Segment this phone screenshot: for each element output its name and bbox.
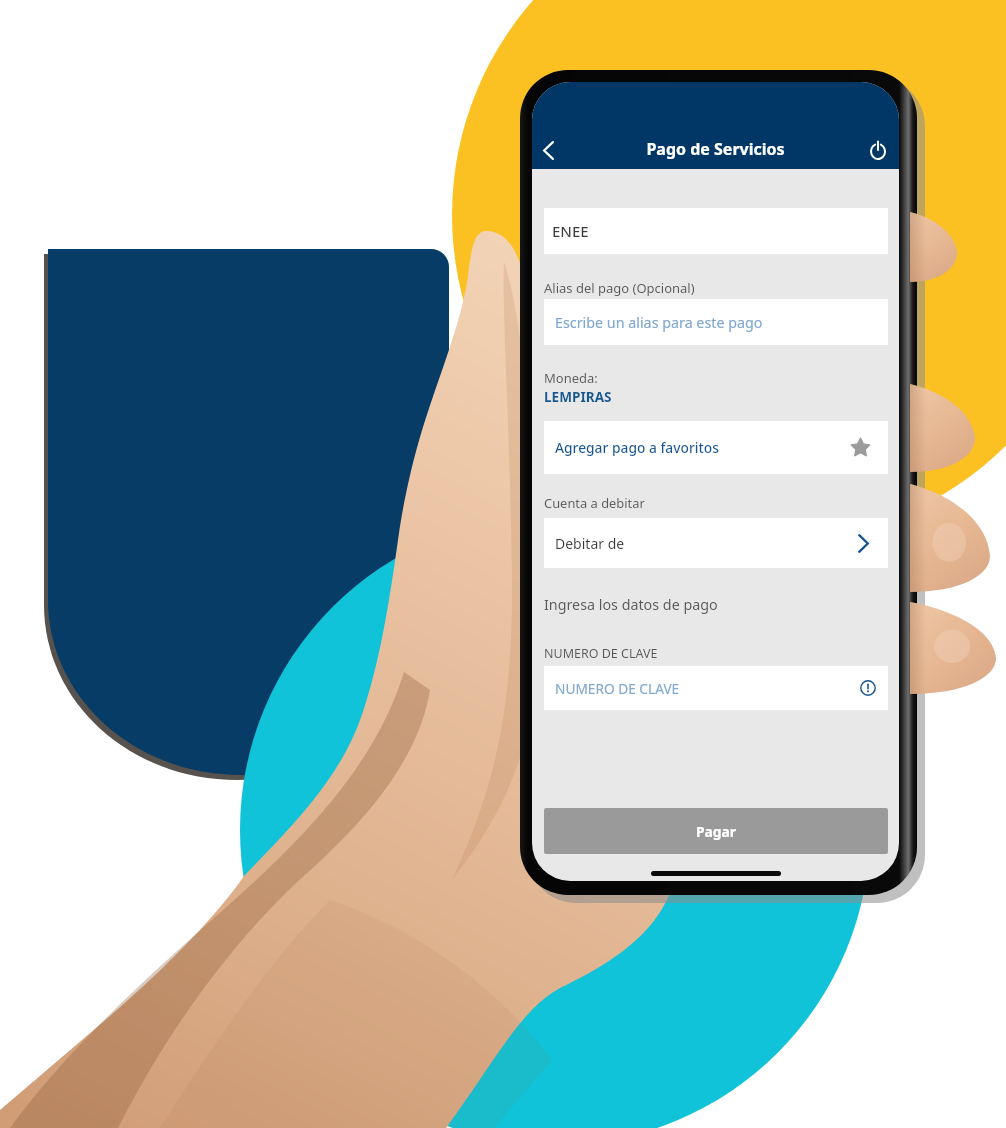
staticText: Cuenta a debitar: [544, 494, 645, 512]
staticText: LEMPIRAS: [544, 387, 612, 406]
button[interactable]: Back: [532, 128, 570, 172]
staticText: Alias del pago (Opcional): [544, 279, 695, 297]
button[interactable]: Power off: [856, 128, 899, 172]
button[interactable]: Escribe un alias para este pago: [544, 299, 888, 345]
button[interactable]: Debitar de: [544, 518, 888, 568]
button[interactable]: ENEE: [544, 208, 888, 254]
staticText: NUMERO DE CLAVE: [544, 645, 658, 662]
button[interactable]: NUMERO DE CLAVE: [544, 666, 888, 710]
staticText: Ingresa los datos de pago: [544, 595, 718, 614]
staticText: Agregar pago a favoritos: [555, 438, 719, 457]
staticText: Pagar: [696, 822, 736, 841]
staticText: Escribe un alias para este pago: [555, 313, 763, 332]
button[interactable]: Pagar: [544, 808, 888, 854]
staticText: ENEE: [552, 221, 589, 241]
staticText: Moneda:: [544, 369, 598, 387]
button[interactable]: Agregar pago a favoritos: [544, 421, 888, 474]
staticText: Debitar de: [555, 534, 625, 553]
staticText: NUMERO DE CLAVE: [555, 679, 680, 698]
staticText: Pago de Servicios: [646, 138, 785, 160]
